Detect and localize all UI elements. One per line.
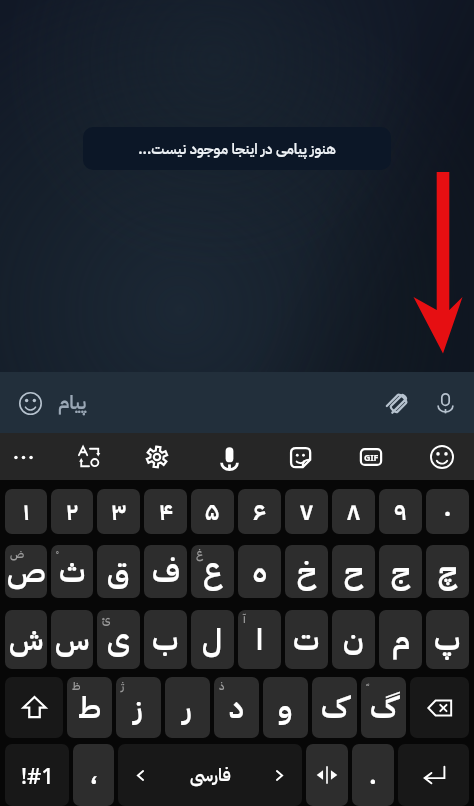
button[interactable]: ح [332, 545, 375, 598]
button[interactable]: Shift [5, 677, 63, 738]
staticText: ط [78, 685, 102, 730]
button[interactable]: ش [5, 610, 47, 669]
button[interactable]: ۶ [238, 489, 281, 534]
staticText: GIF [364, 451, 379, 463]
staticText: ی [107, 617, 130, 662]
staticText: ل [202, 617, 223, 662]
staticText: ۱ [23, 494, 30, 530]
button[interactable]: ۴ [144, 489, 187, 534]
button[interactable]: ب [144, 610, 187, 669]
button[interactable]: More options [2, 436, 44, 478]
staticText: خ [297, 549, 316, 594]
staticText: ف [152, 549, 180, 594]
button[interactable]: Emoji [421, 436, 463, 478]
staticText: ن [343, 617, 364, 662]
staticText: گ [370, 685, 397, 730]
button[interactable]: م [379, 610, 422, 669]
staticText: ۸ [347, 494, 361, 530]
button[interactable]: Emoji [10, 383, 50, 423]
button[interactable]: ق [97, 545, 140, 598]
staticText: !#1 [21, 760, 54, 790]
button[interactable]: ۷ [285, 489, 328, 534]
button[interactable]: فارسی [118, 744, 302, 806]
button[interactable]: ن [332, 610, 375, 669]
staticText: ج [391, 549, 410, 594]
staticText: و [278, 685, 293, 730]
staticText: ۴ [159, 494, 173, 530]
button[interactable]: Voice input [208, 436, 250, 478]
staticText: ش [9, 617, 44, 662]
staticText: . [369, 756, 377, 795]
button[interactable]: . [352, 744, 394, 806]
button[interactable]: ۲ [51, 489, 93, 534]
button[interactable]: ۵ [191, 489, 234, 534]
staticText: ح [344, 549, 363, 594]
staticText: پ [434, 617, 461, 662]
button[interactable]: Enter [398, 744, 469, 806]
button[interactable]: ۸ [332, 489, 375, 534]
button[interactable]: ل [191, 610, 234, 669]
staticText: ۷ [300, 494, 314, 530]
button[interactable]: پ [426, 610, 469, 669]
staticText: ه [253, 549, 267, 594]
staticText: ر [183, 685, 192, 730]
staticText: ک [321, 685, 348, 730]
button[interactable]: ج [379, 545, 422, 598]
staticText: غ [196, 546, 203, 563]
staticText: ۶ [253, 494, 266, 530]
staticText: ذ [219, 678, 225, 695]
staticText: ض [10, 546, 25, 563]
button[interactable]: ظ [67, 677, 112, 738]
button[interactable]: ۳ [97, 489, 140, 534]
staticText: م [392, 617, 410, 662]
staticText: ق [107, 549, 130, 594]
button[interactable]: ۹ [379, 489, 422, 534]
button[interactable]: ئ [97, 610, 140, 669]
button[interactable]: و [263, 677, 308, 738]
button[interactable]: ۰ [426, 489, 469, 534]
staticText: ئ [102, 611, 111, 628]
button[interactable]: Settings [136, 436, 178, 478]
button[interactable]: ژ [116, 677, 161, 738]
staticText: ت [293, 617, 320, 662]
button[interactable]: س [51, 610, 93, 669]
staticText: ۰ [444, 494, 452, 530]
staticText: ظ [72, 678, 81, 695]
button[interactable]: ذ [214, 677, 259, 738]
staticText: ۹ [394, 494, 407, 530]
button[interactable]: هنوز پیامی در اینجا موجود نیست... [83, 127, 391, 170]
button[interactable]: ه [238, 545, 281, 598]
button[interactable]: چ [426, 545, 469, 598]
staticText: ع [203, 549, 223, 594]
button[interactable]: ض [5, 545, 47, 598]
staticText: ا [256, 617, 264, 662]
button[interactable]: GIF [350, 436, 392, 478]
staticText: ۲ [66, 494, 79, 530]
button[interactable]: ر [165, 677, 210, 738]
button[interactable]: ک [312, 677, 357, 738]
button[interactable]: !#1 [5, 744, 69, 806]
button[interactable]: ت [285, 610, 328, 669]
button[interactable]: ف [144, 545, 187, 598]
button[interactable]: خ [285, 545, 328, 598]
button[interactable]: ّ [361, 677, 406, 738]
button[interactable]: Voice message [424, 382, 466, 424]
button[interactable]: ْ [51, 545, 93, 598]
button[interactable]: ۱ [5, 489, 47, 534]
staticText: ب [152, 617, 179, 662]
staticText: س [55, 617, 90, 662]
button[interactable]: ، [73, 744, 114, 806]
button[interactable]: Stickers [279, 436, 321, 478]
staticText: ، [90, 756, 98, 795]
staticText: ۵ [205, 494, 220, 530]
staticText: آ [243, 611, 246, 628]
button[interactable]: Backspace [410, 677, 469, 738]
button[interactable]: Attach file [376, 382, 418, 424]
staticText: ث [59, 549, 86, 594]
button[interactable]: Move cursor [306, 744, 348, 806]
staticText: پیام [58, 388, 87, 417]
button[interactable]: آ [238, 610, 281, 669]
staticText: فارسی [190, 763, 231, 788]
button[interactable]: Translate [68, 436, 110, 478]
button[interactable]: غ [191, 545, 234, 598]
